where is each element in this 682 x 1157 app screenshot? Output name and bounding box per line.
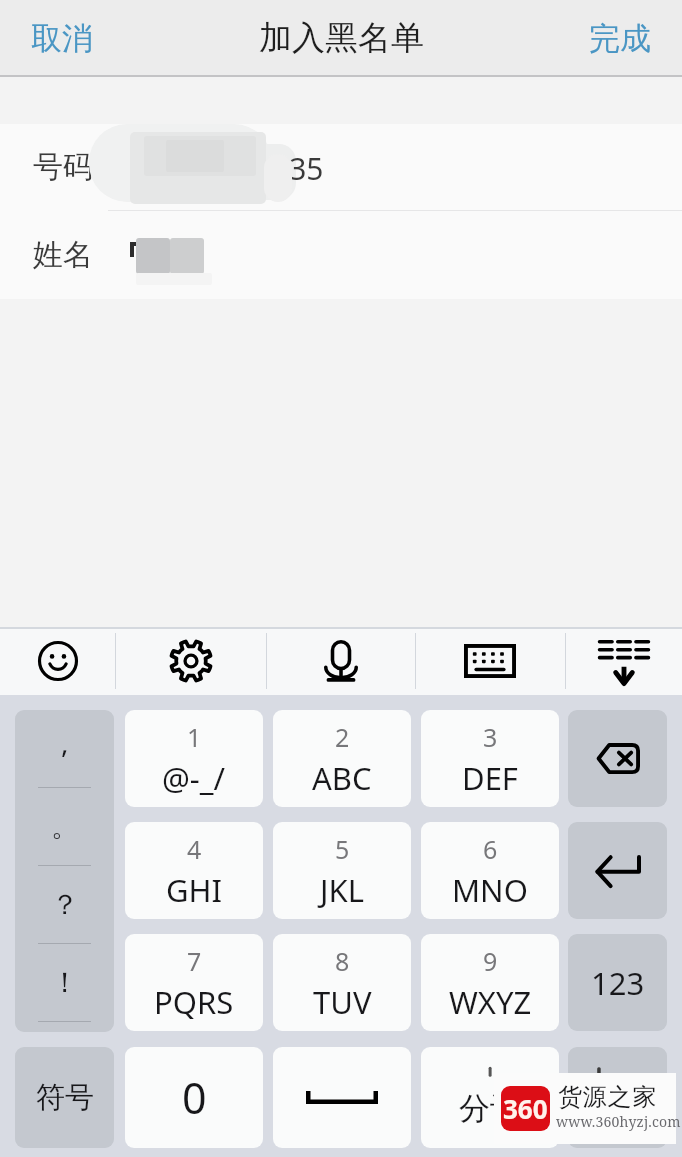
- staticText: GHI: [166, 869, 223, 911]
- staticText: 。: [51, 809, 79, 844]
- button[interactable]: 123: [568, 934, 667, 1031]
- button[interactable]: Voice input: [266, 627, 415, 695]
- button[interactable]: 符号: [15, 1047, 114, 1148]
- button[interactable]: Emoji: [0, 627, 115, 695]
- button[interactable]: 取消: [0, 7, 111, 70]
- staticText: 360: [503, 1091, 548, 1126]
- button[interactable]: ,: [15, 710, 114, 787]
- button[interactable]: 9: [421, 934, 559, 1031]
- button[interactable]: 姓名: [0, 211, 682, 299]
- staticText: 0: [182, 1068, 207, 1127]
- staticText: 5: [335, 832, 350, 866]
- button[interactable]: 3: [421, 710, 559, 807]
- button[interactable]: 6: [421, 822, 559, 919]
- staticText: 符号: [36, 1079, 94, 1116]
- staticText: ？: [51, 887, 79, 922]
- button[interactable]: 7: [125, 934, 263, 1031]
- staticText: 取消: [31, 19, 93, 58]
- staticText: 4: [187, 832, 202, 866]
- staticText: MNO: [452, 869, 528, 911]
- button[interactable]: 1: [125, 710, 263, 807]
- staticText: 6: [483, 832, 498, 866]
- button[interactable]: Settings: [115, 627, 266, 695]
- staticText: 货源之家: [558, 1082, 658, 1112]
- button[interactable]: Hide keyboard: [565, 627, 682, 695]
- staticText: 8: [335, 944, 350, 978]
- staticText: ABC: [312, 757, 372, 799]
- button[interactable]: 。: [15, 788, 114, 865]
- button[interactable]: 5: [273, 822, 411, 919]
- button[interactable]: 分词: [421, 1047, 559, 1148]
- button[interactable]: 8: [273, 934, 411, 1031]
- staticText: 完成: [589, 19, 651, 58]
- staticText: 2: [335, 720, 350, 754]
- button[interactable]: ！: [15, 944, 114, 1021]
- staticText: 7: [187, 944, 202, 978]
- button[interactable]: Enter: [568, 822, 667, 919]
- button[interactable]: Keyboard layout: [415, 627, 565, 695]
- button[interactable]: Space: [273, 1047, 411, 1148]
- staticText: 号码: [33, 148, 93, 186]
- staticText: @-_/: [162, 757, 226, 799]
- staticText: DEF: [462, 757, 518, 799]
- staticText: 加入黑名单: [259, 17, 424, 59]
- staticText: 135: [272, 148, 324, 189]
- staticText: WXYZ: [449, 981, 532, 1023]
- button[interactable]: ？: [15, 866, 114, 943]
- staticText: 分词: [459, 1089, 521, 1128]
- staticText: JKL: [320, 869, 364, 911]
- staticText: TUV: [313, 981, 372, 1023]
- staticText: ！: [51, 965, 79, 1000]
- button[interactable]: 0: [125, 1047, 263, 1148]
- button[interactable]: 号码: [0, 124, 682, 210]
- button[interactable]: 4: [125, 822, 263, 919]
- staticText: PQRS: [154, 981, 234, 1023]
- staticText: 3: [483, 720, 498, 754]
- button[interactable]: Delete: [568, 710, 667, 807]
- staticText: ,: [61, 723, 69, 761]
- button[interactable]: 2: [273, 710, 411, 807]
- button[interactable]: More: [568, 1047, 667, 1148]
- button[interactable]: 完成: [571, 7, 682, 70]
- staticText: www.360hyzj.com: [556, 1112, 681, 1131]
- staticText: 9: [483, 944, 498, 978]
- staticText: 1: [187, 720, 202, 754]
- staticText: 123: [591, 962, 645, 1004]
- staticText: 姓名: [33, 236, 93, 274]
